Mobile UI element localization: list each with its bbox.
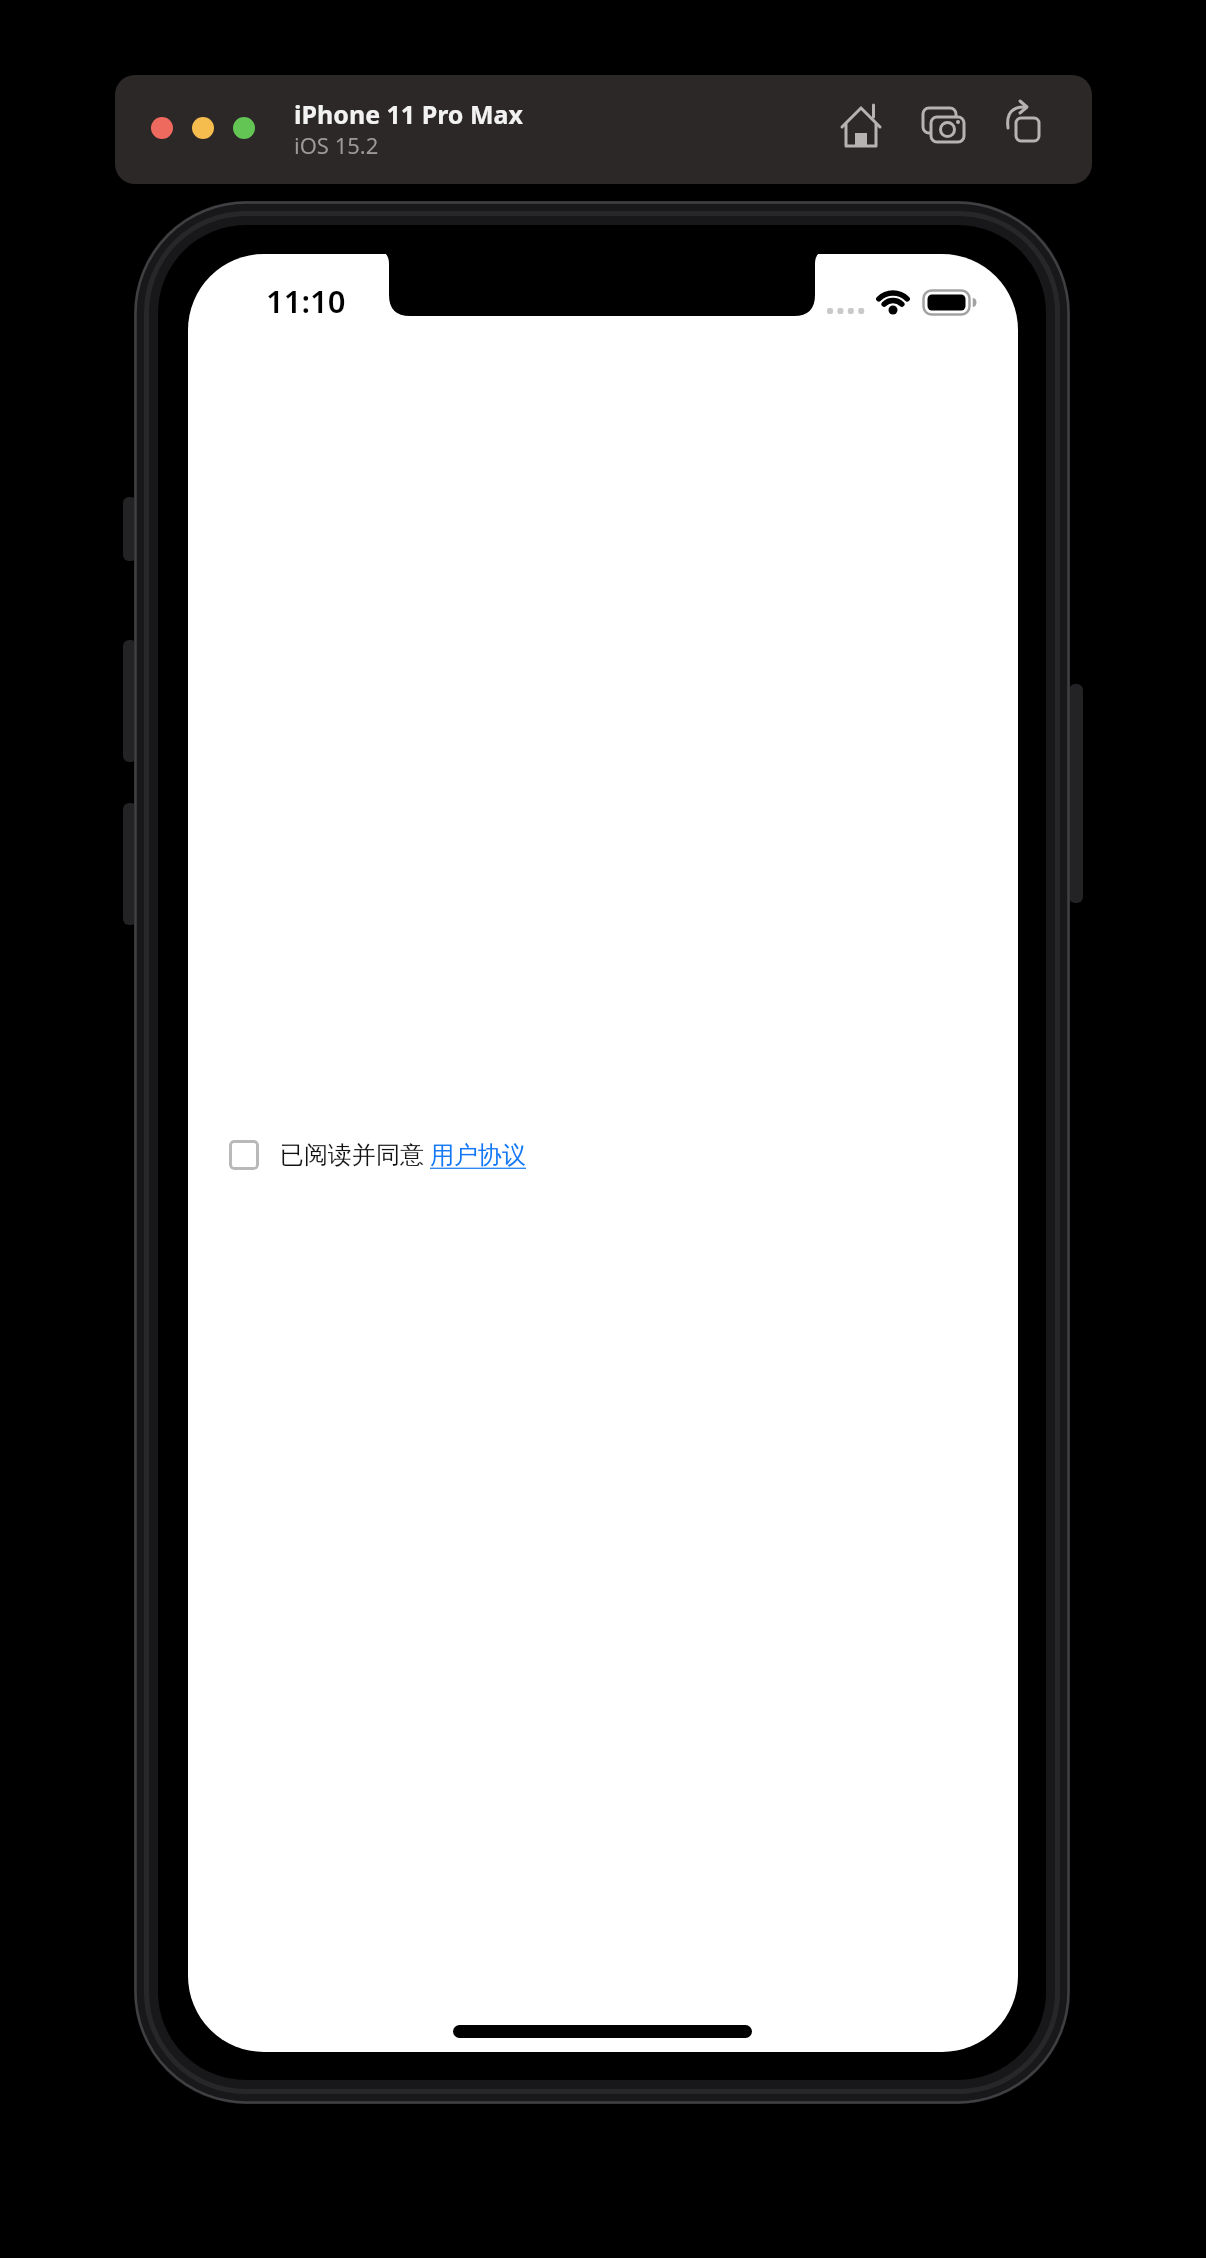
staticText: iPhone 11 Pro Max <box>294 97 523 131</box>
button[interactable] <box>229 1140 259 1170</box>
staticText: 已阅读并同意 <box>280 1140 424 1170</box>
button[interactable] <box>192 117 214 139</box>
button[interactable] <box>839 105 883 149</box>
staticText: iOS 15.2 <box>294 130 379 158</box>
button[interactable] <box>233 117 255 139</box>
button[interactable] <box>151 117 173 139</box>
button[interactable]: 用户协议 <box>430 1140 526 1170</box>
button[interactable] <box>919 105 963 149</box>
button[interactable] <box>1001 105 1045 149</box>
staticText: 用户协议 <box>430 1140 526 1170</box>
staticText: 11:10 <box>266 280 346 316</box>
